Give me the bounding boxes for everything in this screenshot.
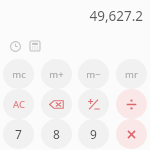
staticText: 7 [15,126,22,142]
button[interactable]: AC [3,89,34,119]
button[interactable]: mr [116,59,147,89]
staticText: 9 [90,126,97,142]
button[interactable]: 7 [3,119,34,149]
button[interactable]: Backspace [41,89,72,119]
button[interactable]: Plus minus [78,89,109,119]
button[interactable]: mc [3,59,34,89]
staticText: m+ [49,68,64,81]
staticText: m− [86,68,101,81]
button[interactable]: History [8,39,22,53]
button[interactable]: Memory [28,39,42,53]
button[interactable]: m− [78,59,109,89]
button[interactable]: 8 [41,119,72,149]
button[interactable]: Divide [116,89,147,119]
staticText: mr [125,68,138,81]
button[interactable]: Multiply [116,119,147,149]
staticText: 49,627.2 [89,7,143,25]
button[interactable]: m+ [41,59,72,89]
staticText: mc [12,68,26,81]
button[interactable]: 9 [78,119,109,149]
staticText: AC [13,98,25,111]
staticText: 8 [53,126,60,142]
